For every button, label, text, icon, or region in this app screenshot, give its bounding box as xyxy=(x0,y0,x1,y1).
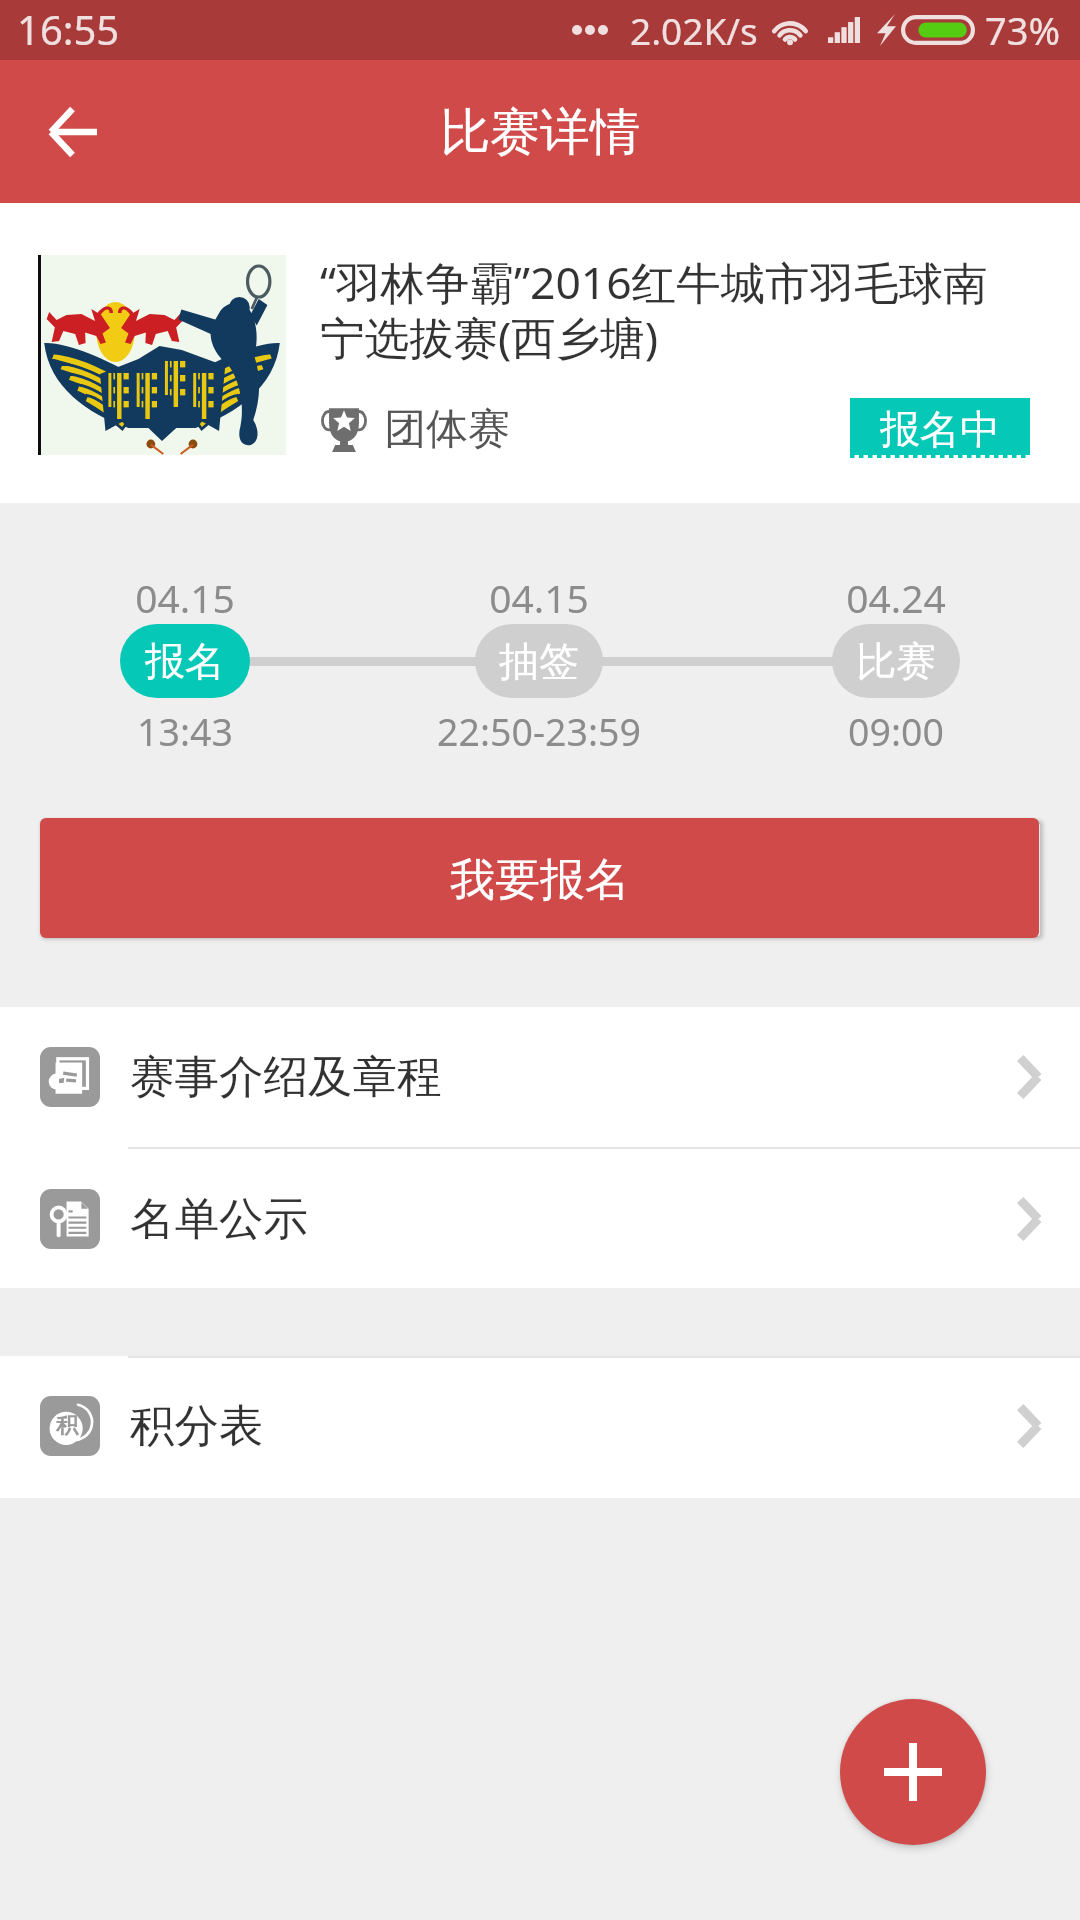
staticText: 13:43 xyxy=(35,706,335,757)
button[interactable]: 报名中 xyxy=(850,398,1030,458)
staticText: 比赛详情 xyxy=(440,101,640,164)
button[interactable]: 抽签 xyxy=(475,624,603,698)
staticText: 22:50-23:59 xyxy=(389,706,689,757)
staticText: 04.24 xyxy=(796,571,996,624)
button[interactable]: 积 xyxy=(0,1356,1080,1496)
staticText: 16:55 xyxy=(17,2,120,56)
button[interactable]: 我要报名 xyxy=(40,818,1039,938)
other: Tournament poster xyxy=(38,255,286,455)
staticText: “羽林争霸”2016红牛城市羽毛球南宁选拔赛(西乡塘) xyxy=(320,251,1010,368)
button[interactable]: 比赛 xyxy=(832,624,960,698)
button[interactable]: 赛事介绍及章程 xyxy=(0,1007,1080,1147)
staticText: 团体赛 xyxy=(384,403,510,456)
staticText: 09:00 xyxy=(746,706,1046,757)
staticText: 报名 xyxy=(145,636,225,686)
staticText: 04.15 xyxy=(439,571,639,624)
staticText: 积分表 xyxy=(130,1398,264,1454)
staticText: 赛事介绍及章程 xyxy=(130,1049,442,1105)
button[interactable]: Tournament poster xyxy=(0,203,1080,503)
staticText: 抽签 xyxy=(499,636,579,686)
button[interactable]: 名单公示 xyxy=(0,1149,1080,1288)
button[interactable]: Back xyxy=(24,84,120,180)
staticText: 名单公示 xyxy=(130,1191,308,1247)
button[interactable]: Add xyxy=(840,1699,986,1845)
staticText: 04.15 xyxy=(85,571,285,624)
staticText: 我要报名 xyxy=(450,852,630,909)
staticText: 比赛 xyxy=(856,636,936,686)
staticText: 73% xyxy=(985,4,1061,56)
button[interactable]: 报名 xyxy=(120,624,250,698)
staticText: 2.02K/s xyxy=(630,5,758,55)
staticText: 报名中 xyxy=(880,404,1000,454)
staticText: 积 xyxy=(56,1412,78,1440)
